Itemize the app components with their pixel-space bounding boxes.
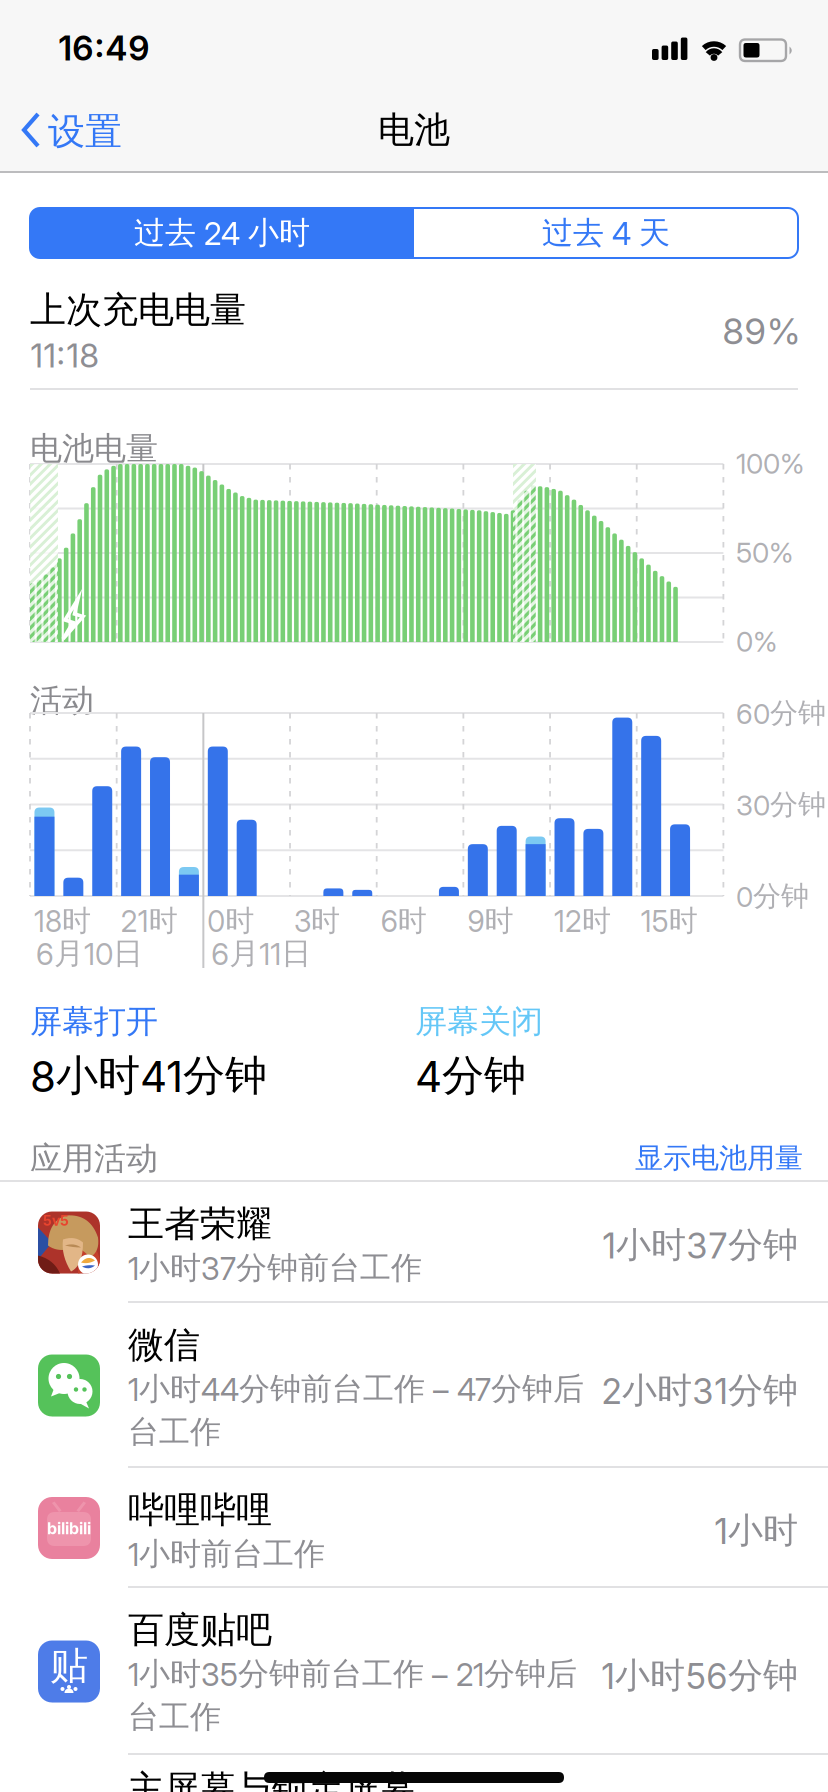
staticText: 1小时56分钟 <box>601 1654 798 1697</box>
staticText: 50% <box>736 536 793 569</box>
button[interactable]: 显示电池用量 <box>635 1141 803 1175</box>
staticText: 3时 <box>294 903 340 939</box>
button[interactable]: 过去 24 小时 <box>30 208 414 258</box>
staticText: 1小时37分钟前台工作 <box>128 1249 422 1287</box>
staticText: 15时 <box>641 903 698 939</box>
staticText: 设置 <box>48 109 122 154</box>
staticText: 0分钟 <box>736 879 809 913</box>
staticText: 1小时35分钟前台工作 – 21分钟后 <box>128 1655 577 1693</box>
staticText: 过去 4 天 <box>542 214 670 252</box>
staticText: 9时 <box>467 903 513 939</box>
staticText: 上次充电电量 <box>30 288 246 332</box>
staticText: 1小时 <box>714 1509 798 1552</box>
staticText: 0时 <box>207 903 254 939</box>
button[interactable]: 主屏幕与锁定屏幕 <box>0 1755 828 1792</box>
staticText: 6月11日 <box>211 935 311 972</box>
button[interactable]: 微信 <box>0 1303 828 1468</box>
staticText: 过去 24 小时 <box>134 214 310 252</box>
staticText: bilibili <box>47 1519 91 1538</box>
button[interactable]: bilibili <box>0 1468 828 1588</box>
staticText: 1小时前台工作 <box>128 1535 325 1573</box>
staticText: 5v5 <box>43 1212 69 1229</box>
staticText: 微信 <box>128 1323 200 1367</box>
staticText: 2小时31分钟 <box>601 1369 798 1412</box>
staticText: 应用活动 <box>30 1139 158 1178</box>
staticText: 1小时44分钟前台工作 – 47分钟后 <box>128 1370 584 1408</box>
staticText: 30分钟 <box>736 787 826 822</box>
staticText: 贴 <box>50 1642 88 1689</box>
staticText: 8小时41分钟 <box>30 1050 267 1102</box>
staticText: 89% <box>722 310 801 352</box>
staticText: 21时 <box>121 903 178 939</box>
button[interactable]: 贴 <box>0 1588 828 1755</box>
button[interactable]: 过去 4 天 <box>414 208 798 258</box>
staticText: 60分钟 <box>736 696 826 730</box>
staticText: 台工作 <box>128 1413 221 1451</box>
staticText: 电池电量 <box>30 429 158 468</box>
staticText: 0% <box>736 625 777 658</box>
staticText: 16:49 <box>58 28 150 68</box>
staticText: 电池 <box>378 108 450 152</box>
staticText: 4分钟 <box>415 1050 526 1102</box>
staticText: 活动 <box>30 681 94 720</box>
staticText: 屏幕关闭 <box>415 1002 543 1041</box>
staticText: 百度贴吧 <box>128 1608 272 1652</box>
button[interactable]: 5v5 <box>0 1182 828 1303</box>
staticText: 18时 <box>34 903 91 939</box>
staticText: 主屏幕与锁定屏幕 <box>128 1767 416 1792</box>
staticText: 哔哩哔哩 <box>128 1488 272 1532</box>
staticText: 王者荣耀 <box>128 1202 272 1246</box>
staticText: 台工作 <box>128 1698 221 1736</box>
staticText: 1小时37分钟 <box>602 1223 798 1266</box>
button[interactable]: 返回设置 <box>8 104 148 156</box>
staticText: 11:18 <box>30 336 99 375</box>
staticText: 显示电池用量 <box>635 1141 803 1175</box>
staticText: 屏幕打开 <box>30 1002 158 1041</box>
staticText: 6月10日 <box>36 935 143 972</box>
staticText: 100% <box>736 447 804 480</box>
staticText: 12时 <box>554 903 611 939</box>
staticText: 6时 <box>381 903 427 939</box>
